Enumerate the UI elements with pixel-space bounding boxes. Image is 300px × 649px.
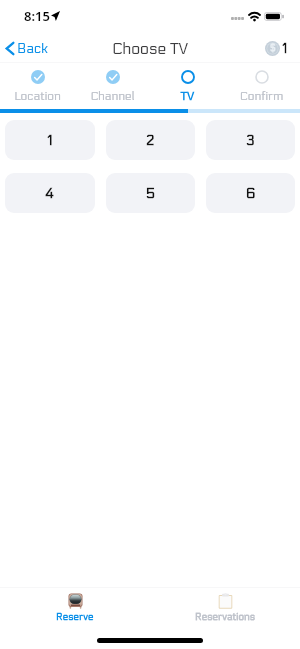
staticText: Reservations [195, 611, 255, 623]
button[interactable]: 5 [106, 173, 195, 213]
button[interactable]: 1 [5, 120, 95, 160]
staticText: Back [17, 40, 49, 57]
button[interactable]: Back [0, 40, 57, 57]
button[interactable]: 4 [5, 173, 95, 213]
staticText: 8:15 [24, 7, 50, 25]
staticText: 2 [146, 132, 155, 149]
button[interactable]: Confirm [224, 68, 299, 103]
staticText: Confirm [224, 89, 299, 103]
button[interactable]: Location [0, 68, 75, 103]
staticText: TV [150, 89, 225, 103]
staticText: 1 [282, 41, 287, 56]
staticText: Channel [75, 89, 150, 103]
staticText: Location [0, 89, 75, 103]
button[interactable]: Reserve [0, 587, 150, 627]
button[interactable]: 2 [106, 120, 195, 160]
staticText: 3 [246, 132, 255, 149]
button[interactable]: Reservations [150, 587, 300, 627]
button[interactable]: TV [150, 68, 225, 103]
staticText: Choose TV [112, 39, 189, 58]
staticText: $ [270, 43, 276, 54]
button[interactable]: 3 [206, 120, 295, 160]
staticText: 4 [45, 185, 55, 202]
staticText: 5 [146, 185, 156, 202]
staticText: 6 [246, 185, 256, 202]
button[interactable]: 6 [206, 173, 295, 213]
staticText: Reserve [56, 611, 94, 623]
button[interactable]: Channel [75, 68, 150, 103]
staticText: 1 [47, 132, 53, 149]
button[interactable]: $ [265, 41, 300, 56]
